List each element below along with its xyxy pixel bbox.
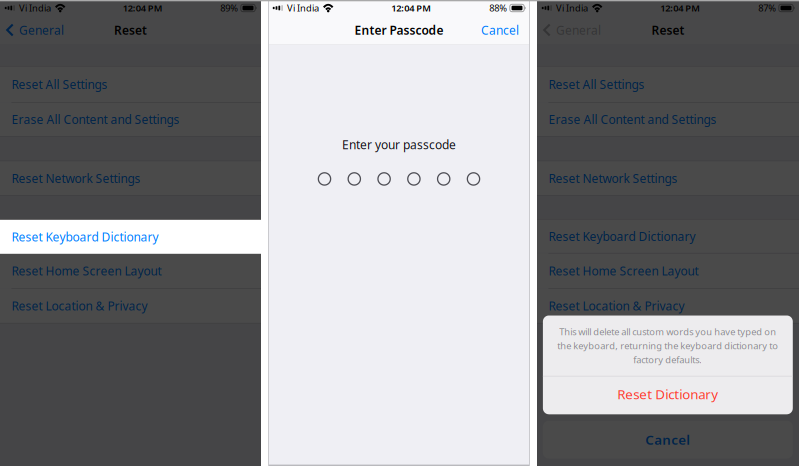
staticText: 12:04 PM [123, 2, 163, 14]
staticText: Reset Home Screen Layout [548, 263, 698, 279]
staticText: Reset Dictionary [617, 385, 718, 403]
staticText: Erase All Content and Settings [11, 111, 179, 127]
button[interactable]: Reset All Settings [0, 67, 261, 102]
staticText: Erase All Content and Settings [548, 111, 716, 127]
staticText: Reset [651, 22, 684, 38]
button[interactable]: Reset Location & Privacy [537, 289, 799, 323]
button[interactable]: Reset Keyboard Dictionary [0, 220, 261, 253]
button[interactable]: General [537, 16, 609, 44]
staticText: 12:04 PM [391, 2, 431, 14]
staticText: Vi India [19, 2, 51, 14]
button[interactable]: Cancel [481, 16, 530, 44]
staticText: Reset [114, 22, 147, 38]
button[interactable]: Reset All Settings [537, 67, 799, 102]
staticText: factory defaults. [633, 353, 702, 366]
staticText: This will delete all custom words you ha… [559, 325, 776, 338]
button[interactable]: Reset Network Settings [0, 161, 261, 195]
staticText: the keyboard, returning the keyboard dic… [557, 339, 778, 352]
staticText: 12:04 PM [660, 2, 700, 14]
staticText: Reset Keyboard Dictionary [548, 228, 695, 244]
staticText: Reset Location & Privacy [11, 298, 147, 314]
staticText: General [19, 22, 64, 38]
staticText: Reset All Settings [11, 76, 107, 92]
staticText: Enter your passcode [342, 137, 456, 153]
staticText: Enter Passcode [354, 22, 443, 38]
staticText: Reset Network Settings [548, 170, 677, 186]
staticText: 89% [220, 2, 238, 14]
staticText: Reset All Settings [548, 76, 644, 92]
staticText: Vi India [556, 2, 588, 14]
button[interactable]: Erase All Content and Settings [537, 103, 799, 136]
button[interactable]: Reset Network Settings [537, 161, 799, 195]
button[interactable]: General [0, 16, 72, 44]
staticText: Cancel [481, 22, 519, 38]
button[interactable]: Reset Home Screen Layout [537, 254, 799, 288]
staticText: Reset Keyboard Dictionary [11, 228, 158, 244]
staticText: Cancel [645, 431, 690, 448]
staticText: Reset Location & Privacy [548, 298, 684, 314]
staticText: General [556, 22, 601, 38]
staticText: 87% [758, 2, 776, 14]
staticText: Reset Network Settings [11, 170, 140, 186]
staticText: Reset Home Screen Layout [11, 263, 161, 279]
button[interactable]: Reset Location & Privacy [0, 289, 261, 323]
button[interactable]: Erase All Content and Settings [0, 103, 261, 136]
button[interactable]: Reset Keyboard Dictionary [0, 220, 261, 254]
staticText: 88% [489, 2, 507, 14]
button[interactable]: Cancel [543, 421, 793, 458]
staticText: Vi India [287, 2, 319, 14]
button[interactable]: Reset Keyboard Dictionary [537, 220, 799, 253]
button[interactable]: Reset Dictionary [543, 376, 793, 414]
button[interactable]: Reset Home Screen Layout [0, 254, 261, 288]
staticText: Reset Keyboard Dictionary [11, 229, 158, 245]
